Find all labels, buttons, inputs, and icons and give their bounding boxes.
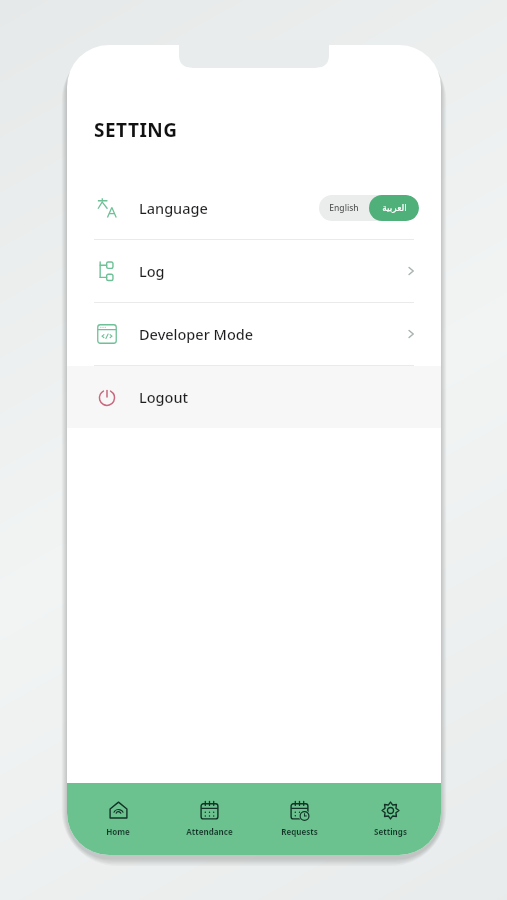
staticText: Attendance <box>186 826 233 837</box>
button[interactable]: Home <box>78 797 158 839</box>
button[interactable]: Logout <box>67 366 441 428</box>
staticText: Log <box>139 261 165 281</box>
other: Requests <box>289 800 310 821</box>
staticText: Home <box>106 826 130 837</box>
staticText: English <box>329 202 359 214</box>
staticText: Developer Mode <box>139 324 254 344</box>
button[interactable]: English <box>319 195 369 221</box>
button[interactable]: Attendance <box>169 797 249 839</box>
staticText: Settings <box>374 826 407 837</box>
staticText: العربية <box>382 203 407 213</box>
staticText: Requests <box>281 826 318 837</box>
other: Settings <box>380 800 401 821</box>
button[interactable]: English <box>319 195 419 221</box>
button[interactable]: Developer Mode <box>67 303 441 365</box>
staticText: Logout <box>139 387 189 407</box>
button[interactable]: Language <box>67 177 441 239</box>
other: Home <box>108 800 129 821</box>
staticText: Language <box>139 198 208 218</box>
button[interactable]: العربية <box>369 195 419 221</box>
button[interactable]: Requests <box>259 797 339 839</box>
other: Attendance <box>199 800 220 821</box>
staticText: SETTING <box>94 117 178 143</box>
button[interactable]: Log <box>67 240 441 302</box>
button[interactable]: Settings <box>350 797 430 839</box>
